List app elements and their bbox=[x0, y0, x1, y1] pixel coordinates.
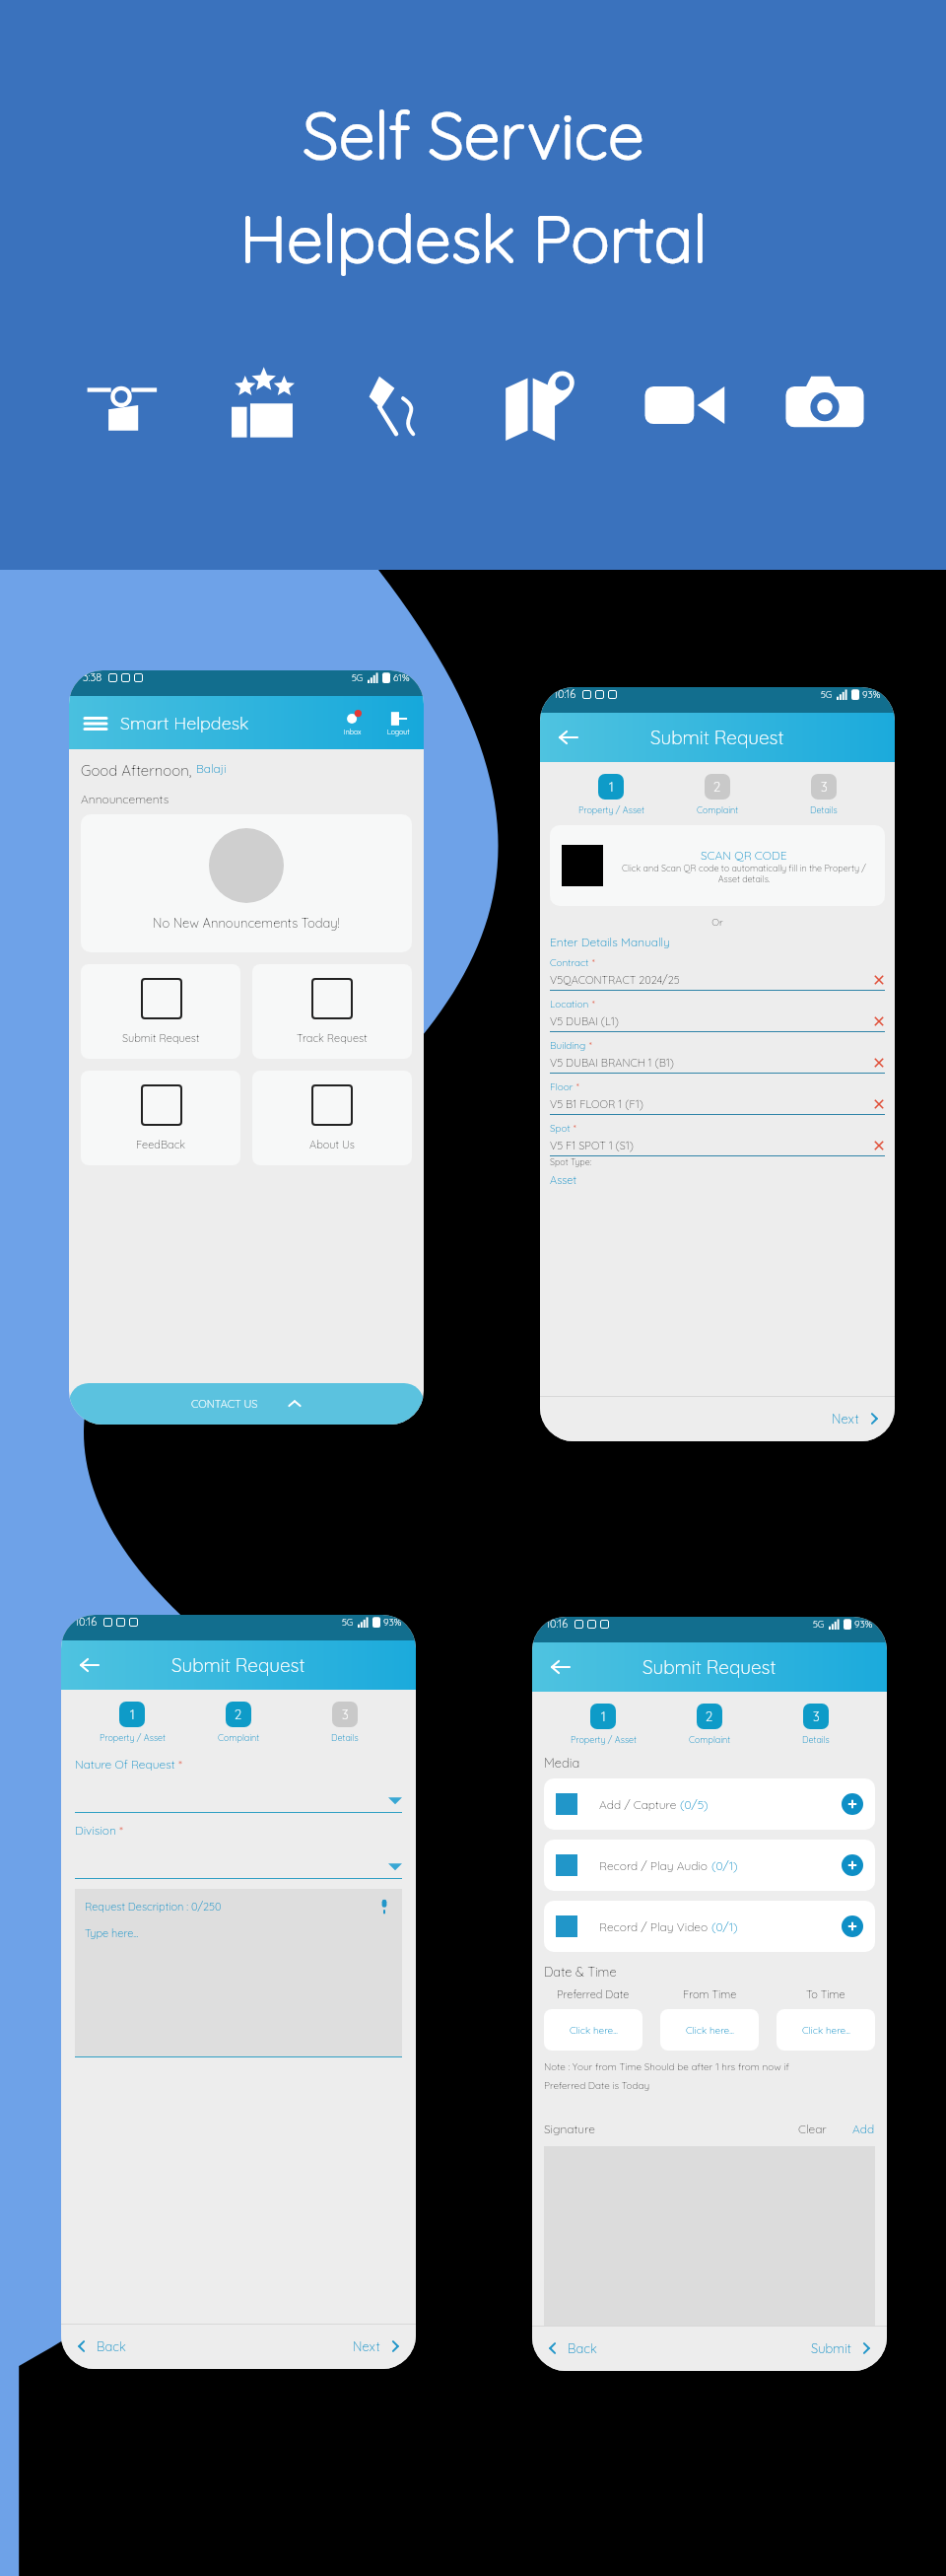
staticText: 3 bbox=[821, 779, 828, 795]
staticText: Click here... bbox=[802, 2024, 850, 2037]
staticText: * bbox=[589, 998, 595, 1010]
button[interactable]: Submit Request bbox=[81, 964, 240, 1059]
button[interactable]: SCAN QR CODE bbox=[550, 825, 885, 906]
staticText: To Time bbox=[806, 1987, 845, 2001]
button[interactable]: Menu bbox=[83, 711, 108, 736]
staticText: Nature Of Request bbox=[75, 1757, 175, 1772]
staticText: Click here... bbox=[686, 2024, 734, 2037]
staticText: Property / Asset bbox=[578, 804, 644, 815]
button[interactable]: Inbox bbox=[344, 710, 362, 736]
staticText: 3:38 bbox=[83, 670, 102, 684]
staticText: 10:16 bbox=[546, 1617, 569, 1631]
staticText: 1 bbox=[130, 1706, 135, 1722]
staticText: * bbox=[571, 1122, 576, 1135]
staticText: V5 DUBAI (L1) bbox=[550, 1014, 619, 1028]
staticText: Preferred Date bbox=[557, 1987, 630, 2001]
staticText: Logout bbox=[387, 728, 410, 736]
staticText: 5G bbox=[352, 672, 364, 683]
staticText: V5 F1 SPOT 1 (S1) bbox=[550, 1139, 634, 1152]
staticText: Record / Play Video bbox=[599, 1919, 711, 1934]
button[interactable]: Add / Capture bbox=[544, 1778, 875, 1830]
staticText: Submit Request bbox=[171, 1653, 305, 1677]
staticText: About Us bbox=[309, 1138, 355, 1151]
staticText: Add / Capture bbox=[599, 1797, 680, 1812]
button[interactable]: Track Request bbox=[252, 964, 412, 1059]
staticText: 93% bbox=[383, 1616, 402, 1629]
button[interactable]: Submit bbox=[811, 2340, 873, 2356]
staticText: 1 bbox=[601, 1708, 606, 1724]
staticText: Helpdesk Portal bbox=[239, 197, 708, 279]
staticText: From Time bbox=[683, 1987, 737, 2001]
button[interactable]: Click here... bbox=[544, 2009, 642, 2051]
staticText: (0/1) bbox=[711, 1858, 738, 1873]
staticText: Record / Play Audio bbox=[599, 1858, 711, 1873]
staticText: 5G bbox=[813, 1619, 825, 1630]
staticText: Submit Request bbox=[122, 1031, 200, 1045]
staticText: Floor bbox=[550, 1080, 574, 1093]
button[interactable]: Click here... bbox=[777, 2009, 875, 2051]
button[interactable]: Add bbox=[852, 2122, 875, 2136]
staticText: Back bbox=[97, 2338, 126, 2354]
staticText: Spot Type: bbox=[550, 1156, 592, 1167]
button[interactable]: Next bbox=[353, 2338, 402, 2354]
staticText: Announcements bbox=[81, 792, 169, 806]
button[interactable]: Record / Play Audio bbox=[544, 1840, 875, 1891]
button[interactable]: CONTACT US bbox=[69, 1383, 424, 1425]
staticText: Contract bbox=[550, 956, 589, 969]
staticText: 10:16 bbox=[75, 1615, 98, 1629]
staticText: 2 bbox=[706, 1708, 713, 1724]
staticText: Complaint bbox=[689, 1734, 731, 1745]
staticText: Submit Request bbox=[642, 1655, 777, 1679]
staticText: Property / Asset bbox=[571, 1734, 637, 1745]
staticText: Building bbox=[550, 1039, 586, 1052]
staticText: Division bbox=[75, 1823, 116, 1838]
button[interactable]: Back bbox=[548, 1654, 574, 1680]
staticText: Asset bbox=[550, 1173, 576, 1187]
staticText: * bbox=[116, 1823, 123, 1838]
staticText: 3 bbox=[813, 1708, 820, 1724]
staticText: SCAN QR CODE bbox=[701, 848, 787, 863]
button[interactable]: Logout bbox=[387, 710, 410, 736]
staticText: Details bbox=[802, 1734, 830, 1745]
staticText: V5 DUBAI BRANCH 1 (B1) bbox=[550, 1056, 675, 1070]
staticText: Spot bbox=[550, 1122, 571, 1135]
staticText: 93% bbox=[862, 688, 881, 701]
staticText: Note : Your from Time Should be after 1 … bbox=[544, 2060, 789, 2073]
staticText: * bbox=[175, 1757, 182, 1772]
staticText: Click and Scan QR code to automatically … bbox=[615, 863, 873, 884]
staticText: Request Description : 0/250 bbox=[85, 1900, 222, 1914]
button[interactable]: About Us bbox=[252, 1071, 412, 1165]
button[interactable]: Next bbox=[832, 1411, 881, 1427]
staticText: Complaint bbox=[697, 804, 739, 815]
staticText: CONTACT US bbox=[191, 1397, 258, 1411]
button[interactable]: Back bbox=[75, 2338, 126, 2354]
staticText: 2 bbox=[235, 1706, 242, 1722]
staticText: Smart Helpdesk bbox=[120, 712, 249, 734]
staticText: 5G bbox=[821, 689, 833, 700]
staticText: Submit Request bbox=[650, 726, 784, 749]
staticText: Self Service bbox=[303, 94, 644, 175]
button[interactable]: FeedBack bbox=[81, 1071, 240, 1165]
staticText: Media bbox=[544, 1755, 580, 1771]
staticText: 2 bbox=[713, 779, 721, 795]
staticText: Inbox bbox=[344, 728, 362, 736]
staticText: Location bbox=[550, 998, 589, 1010]
staticText: 10:16 bbox=[554, 687, 576, 701]
button[interactable]: Back bbox=[77, 1652, 102, 1678]
staticText: 61% bbox=[393, 671, 410, 684]
staticText: No New Announcements Today! bbox=[153, 915, 340, 931]
staticText: * bbox=[589, 956, 595, 969]
staticText: Good Afternoon, bbox=[81, 761, 196, 780]
button[interactable]: Back bbox=[556, 725, 581, 750]
staticText: V5 B1 FLOOR 1 (F1) bbox=[550, 1097, 643, 1111]
button[interactable]: Click here... bbox=[660, 2009, 759, 2051]
staticText: V5QACONTRACT 2024/25 bbox=[550, 973, 680, 987]
button[interactable]: Record / Play Video bbox=[544, 1901, 875, 1952]
button[interactable]: Clear bbox=[798, 2122, 827, 2136]
staticText: Complaint bbox=[218, 1732, 260, 1743]
staticText: * bbox=[586, 1039, 592, 1052]
staticText: Back bbox=[568, 2340, 597, 2356]
staticText: 93% bbox=[854, 1618, 873, 1631]
staticText: (0/5) bbox=[680, 1797, 709, 1812]
button[interactable]: Back bbox=[546, 2340, 597, 2356]
